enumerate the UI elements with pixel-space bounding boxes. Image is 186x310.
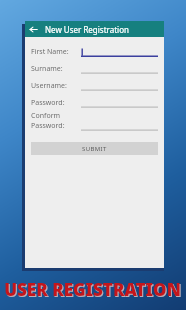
- staticText: USER REGISTRATION: [5, 279, 182, 302]
- button[interactable]: SUBMIT: [31, 142, 158, 155]
- button[interactable]: Back: [25, 21, 41, 37]
- staticText: First Name:: [31, 47, 69, 57]
- button[interactable]: Conform: [31, 111, 158, 131]
- staticText: Password:: [31, 121, 65, 131]
- staticText: USER REGISTRATION: [4, 278, 181, 301]
- staticText: Password:: [31, 98, 65, 108]
- button[interactable]: First Name:: [31, 44, 158, 57]
- button[interactable]: Surname:: [31, 61, 158, 74]
- staticText: SUBMIT: [82, 145, 107, 153]
- staticText: Username:: [31, 81, 67, 91]
- staticText: Conform: [31, 111, 61, 121]
- button[interactable]: Username:: [31, 78, 158, 91]
- staticText: Surname:: [31, 64, 63, 74]
- button[interactable]: Password:: [31, 95, 158, 108]
- staticText: New User Registration: [45, 24, 129, 35]
